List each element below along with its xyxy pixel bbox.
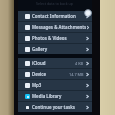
- staticText: Gallery: [32, 46, 48, 52]
- button[interactable]: Gallery: [18, 44, 92, 54]
- staticText: Media Library: [32, 93, 62, 99]
- staticText: iCloud: [32, 60, 46, 66]
- staticText: Device: [32, 71, 47, 77]
- button[interactable]: Photos & Videos: [18, 33, 92, 43]
- staticText: Contact Information: [32, 13, 76, 19]
- staticText: Continue your tasks: [32, 104, 75, 110]
- button[interactable]: Mp3: [18, 80, 92, 90]
- staticText: 14.7 MB: [69, 72, 84, 77]
- staticText: 4 KB: [75, 61, 84, 66]
- button[interactable]: Contact Information: [18, 11, 92, 21]
- button[interactable]: Messages & Attachments: [18, 22, 92, 32]
- button[interactable]: iCloud: [18, 58, 92, 68]
- button[interactable]: Media Library: [18, 91, 92, 101]
- staticText: Mp3: [32, 82, 42, 88]
- staticText: Select data to back up: [36, 1, 74, 6]
- staticText: Messages & Attachments: [32, 24, 87, 30]
- button[interactable]: Device: [18, 69, 92, 79]
- button[interactable]: Continue your tasks: [18, 102, 92, 112]
- staticText: Photos & Videos: [32, 35, 67, 41]
